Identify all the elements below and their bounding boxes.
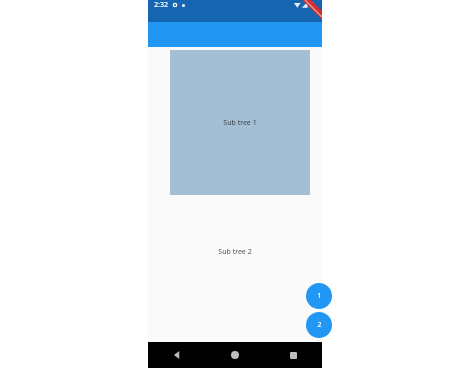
staticText: Sub tree 2 <box>218 247 252 257</box>
button[interactable]: Recent apps <box>264 342 322 368</box>
staticText: 2 <box>317 320 322 330</box>
button[interactable]: Sub tree 1 <box>170 50 310 195</box>
button[interactable]: Sub tree 2 <box>148 195 322 342</box>
staticText: Sub tree 1 <box>223 118 257 128</box>
button[interactable]: Home <box>206 342 264 368</box>
staticText: 1 <box>317 291 322 301</box>
button[interactable]: Action 2 <box>306 312 332 338</box>
button[interactable]: Action 1 <box>306 283 332 309</box>
staticText: 2:32 <box>154 0 168 10</box>
button[interactable]: Back <box>148 342 206 368</box>
